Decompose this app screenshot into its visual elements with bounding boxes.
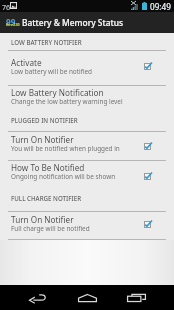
- staticText: You will be notified when plugged in: [11, 144, 120, 153]
- staticText: How To Be Notified: [11, 162, 85, 173]
- staticText: Low Battery Notification: [11, 87, 104, 98]
- staticText: 99%: [6, 16, 19, 28]
- button[interactable]: Back: [21, 285, 54, 310]
- button[interactable]: Recent apps: [120, 285, 153, 310]
- button[interactable]: Activate: [0, 51, 174, 86]
- button[interactable]: Home: [71, 285, 104, 310]
- staticText: Activate: [11, 57, 42, 68]
- staticText: Turn On Notifier: [11, 214, 74, 225]
- staticText: 09:49: [150, 1, 171, 12]
- button[interactable]: Turn On Notifier: [0, 132, 174, 160]
- staticText: Battery & Memory Status: [22, 17, 123, 28]
- staticText: FULL CHARGE NOTIFIER: [11, 194, 82, 202]
- button[interactable]: Low Battery Notification: [0, 86, 174, 113]
- staticText: Rev.230: [6, 22, 19, 27]
- staticText: LOW BATTERY NOTIFIER: [11, 38, 82, 46]
- staticText: 76: [2, 2, 11, 12]
- staticText: Change the low battery warning level: [11, 97, 123, 106]
- staticText: Turn On Notifier: [11, 134, 74, 145]
- staticText: Full charge will be notified: [11, 224, 90, 233]
- staticText: PLUGGED IN NOTIFIER: [11, 116, 78, 124]
- button[interactable]: Turn On Notifier: [0, 212, 174, 239]
- staticText: Ongoing notification will be shown: [11, 172, 116, 181]
- button[interactable]: How To Be Notified: [0, 161, 174, 189]
- staticText: Low battery will be notified: [11, 67, 93, 76]
